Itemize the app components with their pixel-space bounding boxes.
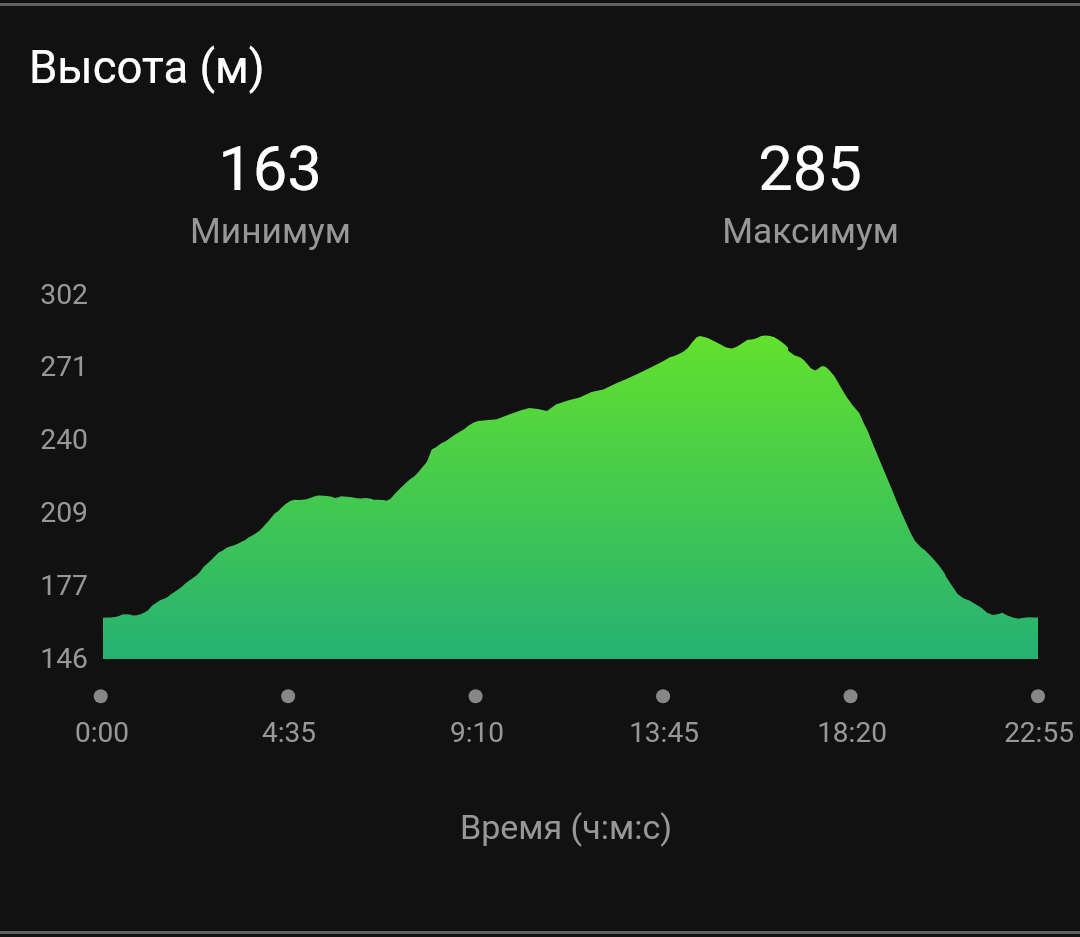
- staticText: 4:35: [189, 716, 389, 749]
- staticText: Время (ч:м:с): [316, 807, 816, 847]
- staticText: Минимум: [190, 210, 351, 251]
- staticText: 285: [758, 133, 862, 205]
- staticText: 9:10: [377, 716, 577, 749]
- staticText: Высота (м): [29, 41, 265, 94]
- button[interactable]: 285: [540, 133, 1080, 251]
- staticText: 0:00: [2, 716, 202, 749]
- button[interactable]: Elevation chart: [0, 0, 1080, 937]
- staticText: 302: [0, 278, 88, 311]
- staticText: Максимум: [722, 210, 899, 251]
- staticText: 240: [0, 423, 88, 456]
- staticText: 271: [0, 350, 88, 383]
- staticText: 18:20: [752, 716, 952, 749]
- staticText: 146: [0, 642, 88, 675]
- staticText: 209: [0, 496, 88, 529]
- staticText: 163: [218, 133, 322, 205]
- button[interactable]: 163: [0, 133, 540, 251]
- staticText: 13:45: [564, 716, 764, 749]
- staticText: 22:55: [939, 716, 1080, 749]
- staticText: 177: [0, 569, 88, 602]
